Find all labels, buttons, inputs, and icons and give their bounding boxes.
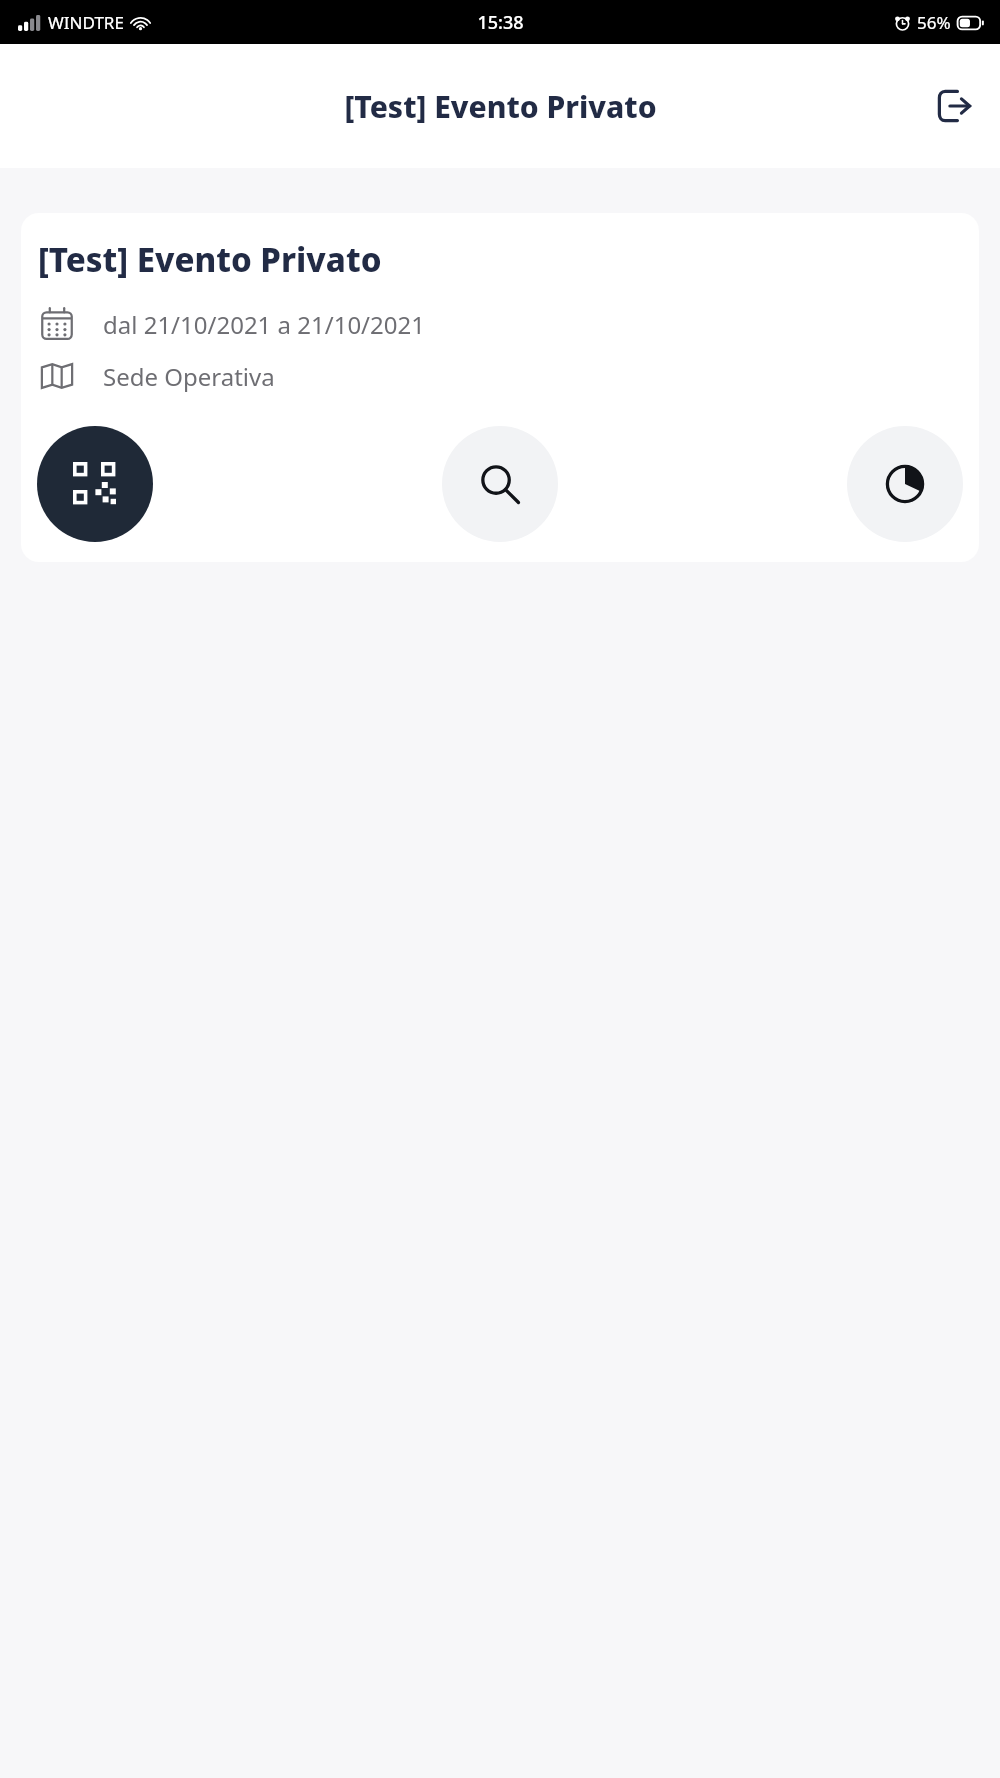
button[interactable]: QR code xyxy=(37,426,153,542)
staticText: 56% xyxy=(917,11,951,34)
staticText: [Test] Evento Privato xyxy=(344,86,657,127)
button[interactable]: Search xyxy=(442,426,558,542)
staticText: WINDTRE xyxy=(48,11,124,34)
staticText: Sede Operativa xyxy=(103,360,275,393)
staticText: 15:38 xyxy=(477,10,524,35)
staticText: [Test] Evento Privato xyxy=(38,237,382,282)
button[interactable]: Statistics xyxy=(847,426,963,542)
button[interactable]: Logout xyxy=(926,78,982,134)
staticText: dal 21/10/2021 a 21/10/2021 xyxy=(103,308,425,341)
